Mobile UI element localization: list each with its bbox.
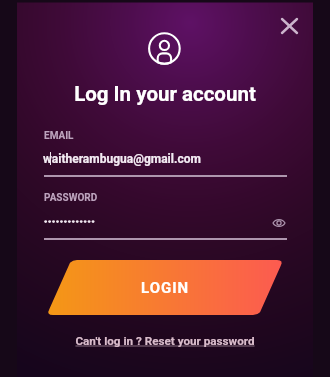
staticText: LOGIN — [141, 279, 190, 297]
button[interactable]: LOGIN — [46, 260, 284, 315]
button[interactable]: Show password — [267, 211, 291, 235]
staticText: Log In your account — [17, 82, 313, 106]
staticText: PASSWORD — [44, 192, 98, 204]
staticText: waitherambugua@gmail.com — [43, 152, 201, 166]
staticText: EMAIL — [44, 130, 74, 142]
button[interactable]: Can't log in ? Reset your password — [17, 334, 313, 348]
button[interactable]: Close — [271, 8, 307, 44]
